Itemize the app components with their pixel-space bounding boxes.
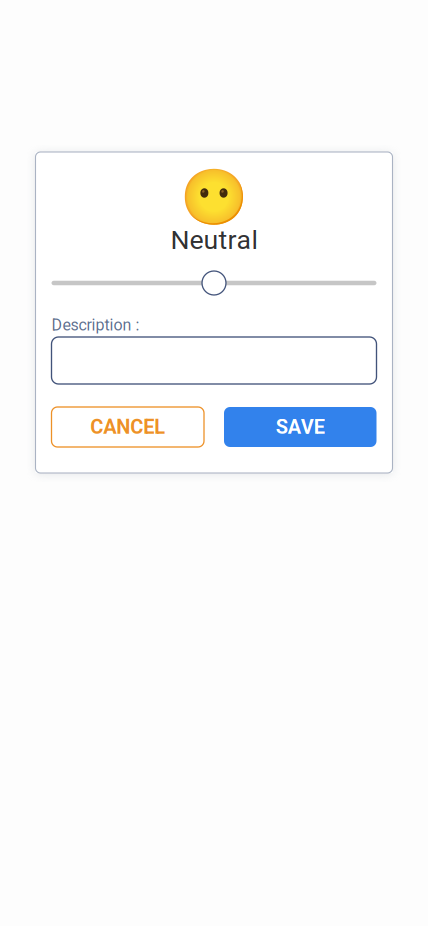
button[interactable]: CANCEL xyxy=(51,407,204,447)
button[interactable]: Description xyxy=(51,337,376,384)
button[interactable]: Mood slider xyxy=(51,271,376,295)
button[interactable]: SAVE xyxy=(224,407,376,447)
staticText: Neutral xyxy=(170,224,257,256)
staticText: Description : xyxy=(51,316,139,334)
staticText: CANCEL xyxy=(90,415,165,439)
staticText: SAVE xyxy=(276,415,325,439)
staticText: 😶 xyxy=(180,165,248,229)
